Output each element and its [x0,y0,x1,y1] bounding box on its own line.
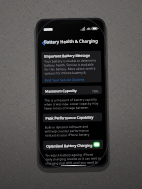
button[interactable]: Peak Performance Capability [42,112,103,123]
staticText: for this battery. More about service [44,66,97,72]
staticText: Find Your Service Options [45,77,85,81]
staticText: 78% [92,88,99,92]
staticText: will help counter performance impacts th… [45,128,101,134]
button[interactable]: Back [41,38,57,47]
staticText: fewer hours of usage between charges. [44,105,100,111]
button[interactable]: Maximum Capacity [42,85,102,96]
staticText: noticed as your iPhone battery chemicall… [45,132,101,138]
staticText: daily charging routine so it can wait to… [45,156,101,162]
staticText: Maximum Capacity [45,88,77,94]
staticText: Your battery is unable to determine [44,58,96,64]
staticText: Back [46,39,56,45]
staticText: Battery Health & Charging [44,38,98,45]
staticText: Peak Performance Capability [45,115,94,121]
staticText: Built-in dynamic software and hardware s… [45,124,101,130]
staticText: options for iPhone battery & charging [44,70,99,75]
other: Optimized Battery Charging on [93,141,100,147]
staticText: charging past 80% until you need to use … [45,160,101,166]
button[interactable]: Optimized Battery Charging [43,139,103,151]
staticText: Optimized Battery Charging [46,143,93,149]
staticText: when it was new. Lower capacity may resu… [44,101,100,107]
staticText: Important Battery Message [44,53,90,59]
staticText: This is a measure of battery capacity re… [44,97,100,103]
staticText: battery health. Service is available [44,62,94,67]
button[interactable]: Find Your Service Options [45,77,85,81]
staticText: To reduce battery ageing, iPhone learns … [45,152,101,158]
